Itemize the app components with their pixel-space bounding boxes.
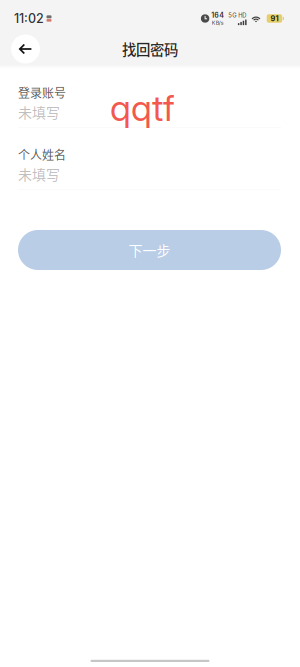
staticText: 164: [211, 11, 224, 19]
staticText: 未填写: [18, 102, 60, 122]
staticText: 个人姓名: [18, 146, 66, 163]
button[interactable]: 登录账号: [18, 87, 281, 119]
staticText: 91: [270, 14, 278, 23]
button[interactable]: 个人姓名: [18, 149, 281, 181]
staticText: qqtf: [110, 86, 175, 130]
staticText: 登录账号: [18, 84, 66, 101]
staticText: 下一步: [128, 240, 170, 260]
button[interactable]: 下一步: [18, 230, 281, 270]
staticText: 11:02: [14, 11, 44, 26]
button[interactable]: Back: [11, 34, 40, 63]
staticText: KB/s: [212, 19, 224, 26]
staticText: 未填写: [18, 164, 60, 184]
staticText: 找回密码: [122, 39, 178, 59]
staticText: 5G HD: [228, 12, 246, 19]
